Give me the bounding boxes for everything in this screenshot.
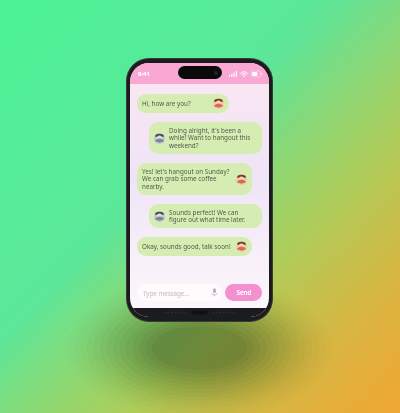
button[interactable]: Hi, how are you? [137, 94, 229, 113]
button[interactable]: Send [225, 284, 262, 301]
button[interactable]: Doing alright, it's been a while! Want t… [149, 122, 262, 154]
button[interactable]: Yes! let's hangout on Sunday? We can gra… [137, 163, 252, 195]
button[interactable]: Voice input [211, 288, 218, 297]
staticText: Send [236, 288, 252, 297]
button[interactable]: Okay, sounds good, talk soon! [137, 237, 252, 256]
staticText: Hi, how are you? [142, 99, 209, 108]
staticText: Type message... [143, 289, 211, 297]
staticText: 9:41 [138, 70, 150, 78]
staticText: Yes! let's hangout on Sunday? We can gra… [142, 167, 232, 191]
staticText: Sounds perfect! We can figure out what t… [169, 208, 257, 224]
button[interactable]: Sounds perfect! We can figure out what t… [149, 204, 262, 228]
button[interactable]: Type message... [143, 284, 218, 301]
staticText: Okay, sounds good, talk soon! [142, 242, 232, 251]
staticText: Doing alright, it's been a while! Want t… [169, 126, 257, 150]
